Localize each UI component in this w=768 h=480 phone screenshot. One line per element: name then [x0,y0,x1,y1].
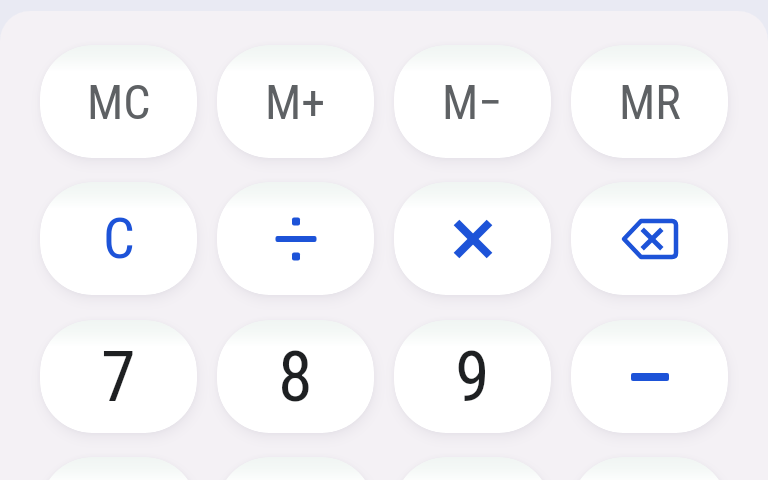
staticText: MR [619,74,681,130]
staticText: MC [87,74,151,130]
button[interactable]: M+ [217,45,374,158]
button[interactable] [571,457,728,480]
button[interactable]: M− [394,45,551,158]
button[interactable]: MR [571,45,728,158]
button[interactable] [394,457,551,480]
button[interactable] [394,182,551,295]
button[interactable] [571,320,728,433]
button[interactable]: 8 [217,320,374,433]
staticText: 9 [455,336,490,418]
button[interactable] [571,182,728,295]
staticText: 8 [278,336,313,418]
staticText: M− [442,74,503,130]
button[interactable] [40,457,197,480]
staticText: M+ [265,74,326,130]
button[interactable]: 9 [394,320,551,433]
button[interactable] [217,457,374,480]
button[interactable]: MC [40,45,197,158]
button[interactable]: 7 [40,320,197,433]
staticText: C [103,206,135,272]
button[interactable] [217,182,374,295]
staticText: 7 [101,336,136,418]
button[interactable]: C [40,182,197,295]
